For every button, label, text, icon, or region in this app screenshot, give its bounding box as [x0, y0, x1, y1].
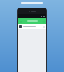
button[interactable]: Screen title — [21, 2, 43, 4]
button[interactable]: Menu — [19, 20, 22, 23]
button[interactable] — [18, 24, 46, 29]
button[interactable]: Search — [27, 20, 38, 22]
